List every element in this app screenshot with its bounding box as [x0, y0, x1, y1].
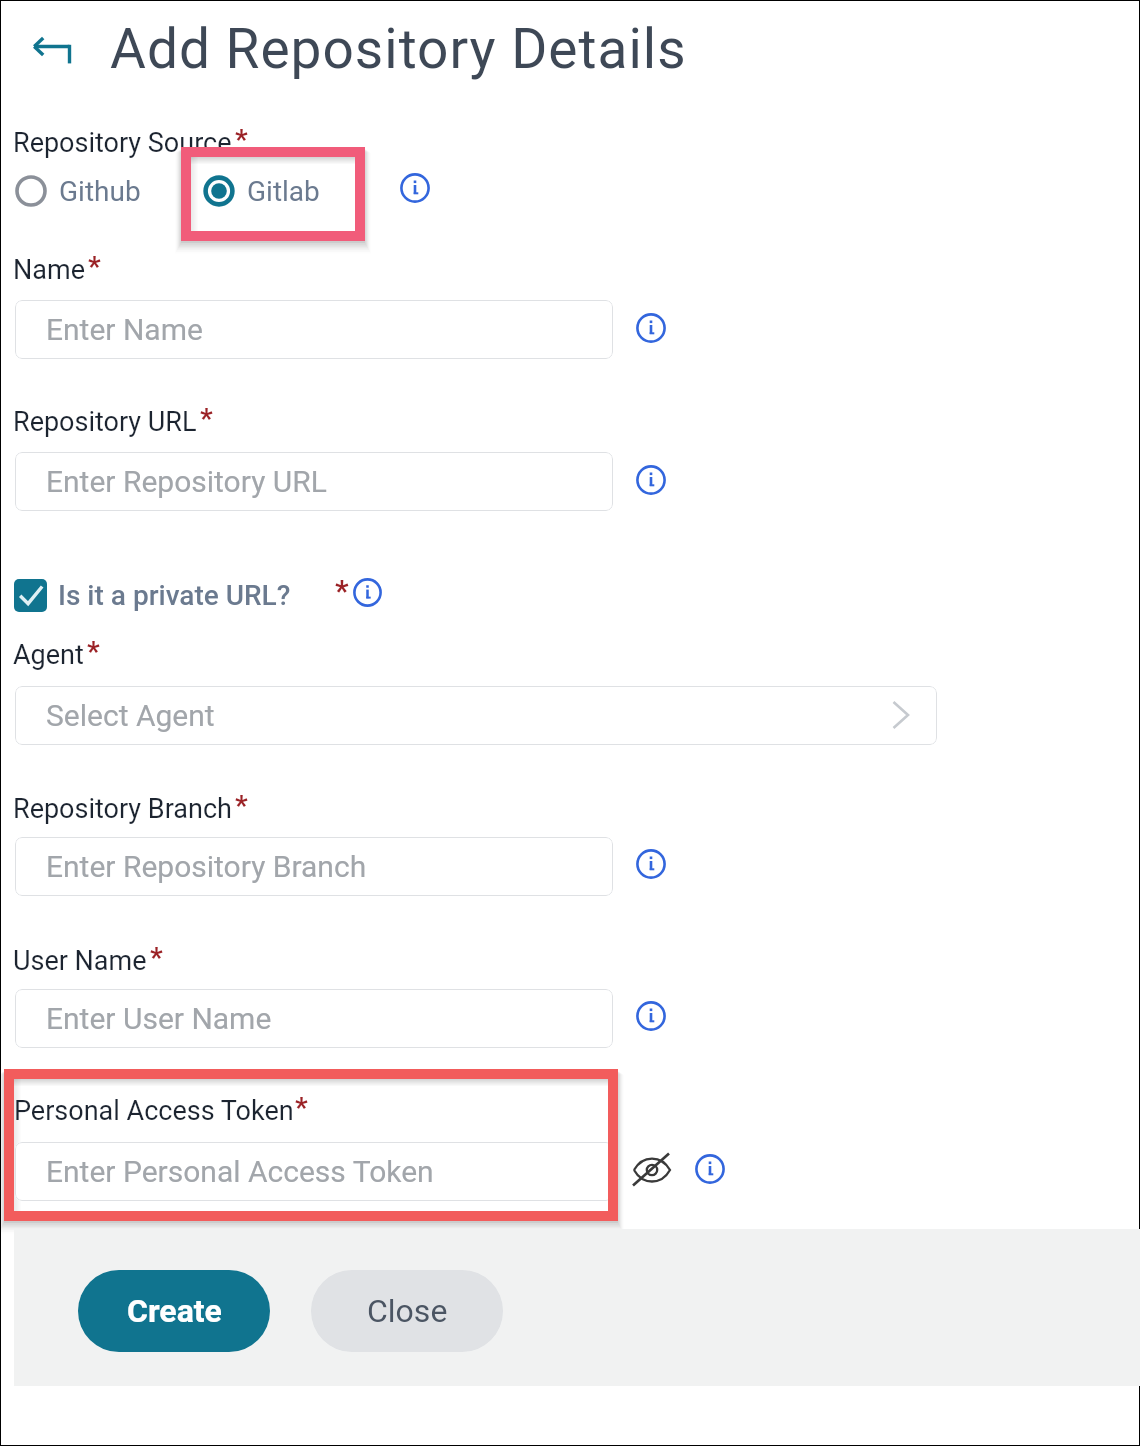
- button[interactable]: Information: [636, 465, 666, 495]
- staticText: User Name: [13, 945, 147, 977]
- button[interactable]: Information: [636, 1001, 666, 1031]
- staticText: *: [150, 941, 163, 974]
- button[interactable]: Gitlab: [202, 173, 320, 209]
- staticText: Enter Personal Access Token: [46, 1154, 434, 1189]
- button[interactable]: Show password: [630, 1147, 674, 1191]
- staticText: Enter Repository Branch: [46, 849, 367, 884]
- staticText: Personal Access Token: [14, 1095, 294, 1127]
- button[interactable]: Information: [636, 849, 666, 879]
- staticText: Enter Repository URL: [46, 464, 327, 499]
- button[interactable]: Back: [21, 19, 77, 75]
- button[interactable]: Github: [14, 173, 141, 209]
- staticText: *: [335, 573, 349, 608]
- button[interactable]: Close: [311, 1270, 503, 1352]
- staticText: *: [235, 123, 248, 156]
- staticText: Enter Name: [46, 312, 203, 347]
- staticText: Agent: [13, 639, 84, 671]
- staticText: Create: [127, 1292, 222, 1330]
- button[interactable]: Select Agent: [15, 686, 937, 745]
- staticText: Repository Branch: [13, 793, 232, 825]
- staticText: *: [235, 789, 248, 822]
- button[interactable]: Information: [636, 313, 666, 343]
- button[interactable]: Create: [78, 1270, 270, 1352]
- staticText: Select Agent: [46, 698, 215, 733]
- button[interactable]: Enter Repository URL: [15, 452, 613, 511]
- staticText: Gitlab: [247, 175, 320, 208]
- button[interactable]: Is it a private URL?: [14, 579, 291, 612]
- staticText: Name: [13, 254, 85, 286]
- button[interactable]: Enter User Name: [15, 989, 613, 1048]
- staticText: Add Repository Details: [110, 17, 687, 81]
- staticText: Enter User Name: [46, 1001, 272, 1036]
- button[interactable]: Information: [353, 578, 382, 607]
- staticText: *: [295, 1091, 308, 1124]
- staticText: Repository URL: [13, 406, 197, 438]
- button[interactable]: Enter Personal Access Token: [15, 1142, 613, 1201]
- staticText: Repository Source: [13, 127, 232, 159]
- button[interactable]: Information: [400, 173, 430, 203]
- staticText: Is it a private URL?: [58, 579, 291, 612]
- button[interactable]: Enter Name: [15, 300, 613, 359]
- staticText: *: [88, 250, 101, 283]
- staticText: *: [200, 402, 213, 435]
- staticText: Close: [367, 1292, 448, 1330]
- button[interactable]: Enter Repository Branch: [15, 837, 613, 896]
- staticText: Github: [59, 175, 141, 208]
- button[interactable]: Information: [695, 1154, 725, 1184]
- staticText: *: [87, 635, 100, 668]
